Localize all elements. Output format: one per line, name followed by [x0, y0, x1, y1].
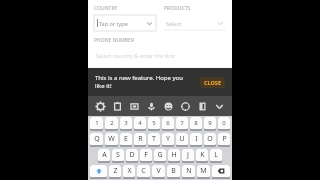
- staticText: S: [116, 150, 120, 160]
- staticText: B: [171, 166, 176, 176]
- staticText: M: [200, 166, 207, 176]
- button[interactable]: 3: [120, 117, 132, 131]
- button[interactable]: Collapse: [211, 96, 228, 116]
- staticText: L: [214, 150, 218, 160]
- staticText: W: [108, 134, 115, 144]
- button[interactable]: 1: [90, 117, 103, 131]
- button[interactable]: M: [197, 165, 210, 179]
- button[interactable]: 8: [190, 117, 202, 131]
- button[interactable]: X: [123, 165, 135, 179]
- staticText: F: [144, 150, 148, 160]
- staticText: 0: [222, 119, 226, 127]
- staticText: 3: [124, 119, 128, 127]
- button[interactable]: T: [148, 133, 160, 147]
- staticText: V: [156, 166, 161, 176]
- button[interactable]: B: [167, 165, 180, 179]
- button[interactable]: Clipboard: [109, 96, 126, 116]
- button[interactable]: E: [120, 133, 132, 147]
- button[interactable]: H: [168, 149, 180, 163]
- button[interactable]: A: [98, 149, 110, 163]
- button[interactable]: Settings: [92, 96, 109, 116]
- button[interactable]: Voice input: [143, 96, 160, 116]
- button[interactable]: L: [210, 149, 222, 163]
- button[interactable]: 4: [134, 117, 146, 131]
- button[interactable]: Key: [90, 165, 107, 179]
- button[interactable]: K: [196, 149, 208, 163]
- staticText: G: [157, 150, 163, 160]
- staticText: Select: [166, 20, 217, 27]
- staticText: H: [171, 150, 177, 160]
- staticText: D: [129, 150, 135, 160]
- staticText: I: [195, 134, 198, 144]
- staticText: X: [127, 166, 132, 176]
- staticText: 6: [166, 119, 170, 127]
- button[interactable]: Move cursor: [177, 96, 194, 116]
- button[interactable]: Emoji: [160, 96, 177, 116]
- staticText: C: [141, 166, 146, 176]
- button[interactable]: D: [126, 149, 138, 163]
- staticText: N: [186, 166, 192, 176]
- staticText: P: [222, 134, 227, 144]
- button[interactable]: 0: [218, 117, 230, 131]
- staticText: E: [124, 134, 128, 144]
- button[interactable]: 2: [105, 117, 118, 131]
- button[interactable]: 6: [162, 117, 174, 131]
- staticText: 4: [138, 119, 142, 127]
- staticText: This is a new feature. Hope you like it!: [95, 74, 194, 90]
- staticText: PHONE NUMBER: [94, 37, 226, 44]
- staticText: Q: [94, 134, 100, 144]
- button[interactable]: F: [140, 149, 152, 163]
- button[interactable]: 7: [176, 117, 188, 131]
- button[interactable]: C: [137, 165, 150, 179]
- staticText: PRODUCTS: [164, 5, 226, 12]
- staticText: Select country & enter the first: [96, 52, 175, 59]
- button[interactable]: P: [218, 133, 230, 147]
- staticText: Tap or type: [99, 20, 146, 27]
- staticText: T: [152, 134, 156, 144]
- staticText: 1: [95, 119, 99, 127]
- staticText: Y: [166, 134, 170, 144]
- staticText: U: [179, 134, 185, 144]
- staticText: Z: [113, 166, 118, 176]
- button[interactable]: Z: [109, 165, 121, 179]
- staticText: 9: [208, 119, 212, 127]
- staticText: J: [187, 150, 189, 160]
- staticText: 8: [194, 119, 198, 127]
- button[interactable]: J: [182, 149, 194, 163]
- button[interactable]: S: [112, 149, 124, 163]
- button[interactable]: Select country & enter the first: [94, 48, 226, 62]
- button[interactable]: R: [134, 133, 146, 147]
- button[interactable]: O: [204, 133, 216, 147]
- button[interactable]: 9: [204, 117, 216, 131]
- staticText: O: [207, 134, 213, 144]
- staticText: COUNTRY: [94, 5, 156, 12]
- staticText: R: [138, 134, 143, 144]
- button[interactable]: Q: [90, 133, 103, 147]
- button[interactable]: W: [105, 133, 118, 147]
- button[interactable]: G: [154, 149, 166, 163]
- staticText: 7: [180, 119, 184, 127]
- button[interactable]: Y: [162, 133, 174, 147]
- button[interactable]: Select: [164, 15, 226, 31]
- staticText: 5: [152, 119, 156, 127]
- button[interactable]: U: [176, 133, 188, 147]
- staticText: 2: [110, 119, 114, 127]
- button[interactable]: V: [152, 165, 165, 179]
- button[interactable]: Tap or type: [94, 15, 156, 31]
- button[interactable]: 5: [148, 117, 160, 131]
- button[interactable]: Key: [212, 165, 230, 179]
- button[interactable]: CLOSE: [200, 77, 225, 88]
- button[interactable]: Theme: [194, 96, 211, 116]
- staticText: K: [200, 150, 205, 160]
- staticText: A: [102, 150, 107, 160]
- button[interactable]: I: [190, 133, 202, 147]
- staticText: CLOSE: [204, 79, 221, 86]
- button[interactable]: N: [182, 165, 195, 179]
- button[interactable]: Stickers: [126, 96, 143, 116]
